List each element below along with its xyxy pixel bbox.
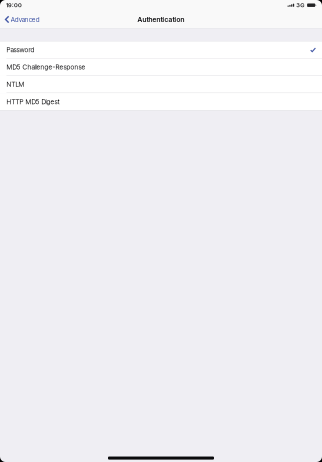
- button[interactable]: HTTP MD5 Digest: [0, 93, 322, 110]
- staticText: 19:00: [6, 2, 22, 9]
- button[interactable]: NTLM: [0, 76, 322, 93]
- staticText: HTTP MD5 Digest: [6, 98, 59, 106]
- staticText: Authentication: [137, 15, 184, 23]
- staticText: Password: [6, 46, 34, 54]
- button[interactable]: MD5 Challenge-Response: [0, 59, 322, 76]
- button[interactable]: Advanced: [0, 12, 43, 26]
- staticText: Advanced: [11, 15, 40, 23]
- staticText: NTLM: [6, 80, 24, 88]
- button[interactable]: Password: [0, 41, 322, 59]
- staticText: 3G: [296, 2, 304, 9]
- staticText: MD5 Challenge-Response: [6, 63, 85, 71]
